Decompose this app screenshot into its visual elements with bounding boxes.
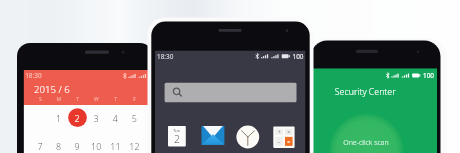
- button[interactable]: Smartphone product showcase: [0, 0, 460, 153]
